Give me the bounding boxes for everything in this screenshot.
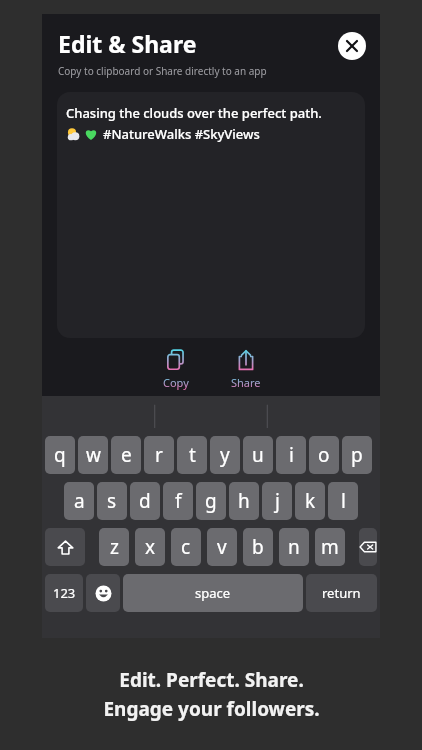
button[interactable]: Copy	[141, 349, 211, 390]
button[interactable]: e	[111, 436, 141, 474]
button[interactable]: m	[315, 528, 345, 566]
button[interactable]: d	[130, 482, 160, 520]
button[interactable]: Emoji	[86, 574, 120, 612]
staticText: Share	[231, 375, 261, 390]
button[interactable]: Shift	[45, 528, 85, 566]
staticText: w	[86, 442, 101, 468]
staticText: i	[289, 442, 294, 468]
button[interactable]: b	[243, 528, 273, 566]
button[interactable]: j	[262, 482, 292, 520]
button[interactable]: q	[45, 436, 75, 474]
staticText: Copy	[163, 375, 189, 390]
button[interactable]: n	[279, 528, 309, 566]
staticText: 123	[53, 584, 76, 602]
button[interactable]: k	[295, 482, 325, 520]
staticText: n	[288, 534, 300, 560]
button[interactable]: s	[97, 482, 127, 520]
button[interactable]: 123	[45, 574, 83, 612]
staticText: e	[121, 442, 132, 468]
button[interactable]: l	[328, 482, 358, 520]
button[interactable]: h	[229, 482, 259, 520]
button[interactable]: t	[177, 436, 207, 474]
button[interactable]: o	[309, 436, 339, 474]
staticText: v	[217, 534, 227, 560]
button[interactable]: r	[144, 436, 174, 474]
staticText: l	[341, 488, 346, 514]
staticText: a	[74, 488, 85, 514]
button[interactable]: space	[123, 574, 303, 612]
button[interactable]: u	[243, 436, 273, 474]
staticText: q	[54, 442, 66, 468]
staticText: c	[181, 534, 191, 560]
button[interactable]: Backspace	[359, 528, 377, 566]
button[interactable]: z	[99, 528, 129, 566]
staticText: space	[195, 584, 231, 602]
staticText: t	[189, 442, 196, 468]
staticText: x	[145, 534, 156, 560]
button[interactable]: c	[171, 528, 201, 566]
staticText: Chasing the clouds over the perfect path…	[66, 104, 322, 122]
staticText: b	[252, 534, 264, 560]
button[interactable]: x	[135, 528, 165, 566]
staticText: return	[322, 584, 361, 602]
staticText: y	[220, 442, 230, 468]
staticText: r	[155, 442, 163, 468]
staticText: Edit. Perfect. Share.	[119, 667, 304, 693]
button[interactable]: Share	[211, 349, 281, 390]
button[interactable]: f	[163, 482, 193, 520]
button[interactable]: a	[64, 482, 94, 520]
button[interactable]: v	[207, 528, 237, 566]
staticText: m	[321, 534, 339, 560]
button[interactable]: i	[276, 436, 306, 474]
staticText: Edit & Share	[58, 28, 197, 59]
staticText: f	[175, 488, 182, 514]
staticText: o	[318, 442, 330, 468]
button[interactable]: Close	[338, 32, 366, 60]
staticText: #NatureWalks #SkyViews	[103, 125, 260, 143]
button[interactable]: y	[210, 436, 240, 474]
staticText: g	[205, 488, 217, 514]
staticText: u	[252, 442, 264, 468]
staticText: z	[110, 534, 119, 560]
button[interactable]: return	[306, 574, 377, 612]
staticText: j	[275, 488, 280, 514]
button[interactable]: w	[78, 436, 108, 474]
staticText: Copy to clipboard or Share directly to a…	[58, 64, 267, 78]
staticText: s	[107, 488, 117, 514]
staticText: Engage your followers.	[103, 696, 320, 722]
staticText: k	[305, 488, 316, 514]
button[interactable]: p	[342, 436, 372, 474]
staticText: h	[238, 488, 250, 514]
button[interactable]: g	[196, 482, 226, 520]
staticText: p	[351, 442, 363, 468]
staticText: d	[139, 488, 151, 514]
